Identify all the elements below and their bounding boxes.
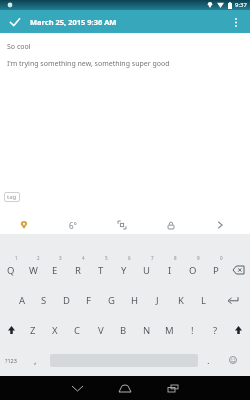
staticText: N xyxy=(143,324,151,337)
staticText: U xyxy=(143,264,150,277)
staticText: F xyxy=(86,294,91,307)
button[interactable] xyxy=(227,315,250,345)
button[interactable]: V xyxy=(89,315,112,345)
staticText: 2 xyxy=(37,255,40,261)
button[interactable] xyxy=(215,285,250,315)
staticText: S xyxy=(41,294,47,307)
button[interactable] xyxy=(230,16,242,28)
button[interactable]: ! xyxy=(181,315,204,345)
staticText: 9:37 xyxy=(235,1,247,9)
staticText: V xyxy=(98,324,104,337)
staticText: W xyxy=(29,264,38,277)
button[interactable]: ? xyxy=(204,315,227,345)
button[interactable] xyxy=(108,376,142,400)
button[interactable] xyxy=(0,315,22,345)
staticText: ! xyxy=(191,324,194,337)
button[interactable]: O xyxy=(181,255,204,285)
staticText: O xyxy=(189,264,197,277)
staticText: So cool xyxy=(7,42,31,52)
staticText: ? xyxy=(213,324,218,337)
button[interactable]: U xyxy=(135,255,158,285)
staticText: 9 xyxy=(197,255,200,261)
button[interactable]: K xyxy=(169,285,192,315)
staticText: E xyxy=(52,264,58,277)
staticText: 6° xyxy=(69,220,77,231)
button[interactable]: J xyxy=(146,285,169,315)
button[interactable]: X xyxy=(44,315,66,345)
button[interactable] xyxy=(0,216,48,234)
button[interactable]: H xyxy=(123,285,146,315)
staticText: I xyxy=(168,264,172,277)
staticText: C xyxy=(74,324,81,337)
staticText: A xyxy=(19,294,26,307)
staticText: tag xyxy=(7,193,17,201)
staticText: R xyxy=(75,264,81,277)
button[interactable]: D xyxy=(55,285,77,315)
button[interactable]: , xyxy=(22,345,48,375)
staticText: T xyxy=(98,264,104,277)
staticText: K xyxy=(178,294,184,307)
button[interactable]: B xyxy=(112,315,135,345)
staticText: , xyxy=(34,354,37,367)
staticText: L xyxy=(201,294,206,307)
button[interactable] xyxy=(227,255,250,285)
button[interactable]: Z xyxy=(22,315,44,345)
button[interactable]: G xyxy=(100,285,123,315)
button[interactable]: T xyxy=(89,255,112,285)
staticText: 5 xyxy=(105,255,108,261)
staticText: H xyxy=(131,294,139,307)
staticText: 0 xyxy=(220,255,223,261)
button[interactable]: tag xyxy=(4,192,20,202)
button[interactable]: F xyxy=(77,285,100,315)
staticText: March 25, 2015 9:36 AM xyxy=(30,17,117,27)
staticText: Y xyxy=(121,264,127,277)
staticText: 1 xyxy=(15,255,18,261)
staticText: 4 xyxy=(82,255,85,261)
staticText: J xyxy=(156,294,159,307)
button[interactable] xyxy=(195,216,244,234)
button[interactable]: I xyxy=(158,255,181,285)
staticText: 6 xyxy=(128,255,131,261)
staticText: I'm trying something new, something supe… xyxy=(7,59,170,69)
staticText: . xyxy=(207,354,210,367)
button[interactable] xyxy=(8,15,22,29)
button[interactable]: P xyxy=(204,255,227,285)
staticText: 8 xyxy=(174,255,177,261)
button[interactable]: ?123 xyxy=(0,345,22,375)
staticText: Z xyxy=(30,324,36,337)
button[interactable]: Y xyxy=(112,255,135,285)
button[interactable]: E xyxy=(44,255,66,285)
staticText: M xyxy=(165,324,174,337)
staticText: X xyxy=(52,324,58,337)
staticText: P xyxy=(213,264,219,277)
staticText: B xyxy=(120,324,127,337)
staticText: D xyxy=(63,294,70,307)
staticText: G xyxy=(108,294,115,307)
button[interactable] xyxy=(216,345,250,375)
button[interactable]: 6° xyxy=(48,216,97,234)
button[interactable]: N xyxy=(135,315,158,345)
button[interactable]: A xyxy=(11,285,33,315)
button[interactable]: L xyxy=(192,285,215,315)
button[interactable]: W xyxy=(22,255,44,285)
button[interactable]: Q xyxy=(0,255,22,285)
button[interactable]: R xyxy=(66,255,89,285)
button[interactable]: C xyxy=(66,315,89,345)
staticText: 7 xyxy=(151,255,154,261)
staticText: 3 xyxy=(59,255,62,261)
button[interactable] xyxy=(97,216,146,234)
staticText: Q xyxy=(7,264,15,277)
button[interactable]: M xyxy=(158,315,181,345)
button[interactable] xyxy=(60,376,94,400)
button[interactable] xyxy=(146,216,195,234)
staticText: ?123 xyxy=(5,357,17,364)
button[interactable]: S xyxy=(33,285,55,315)
button[interactable]: . xyxy=(200,345,216,375)
button[interactable] xyxy=(156,376,190,400)
